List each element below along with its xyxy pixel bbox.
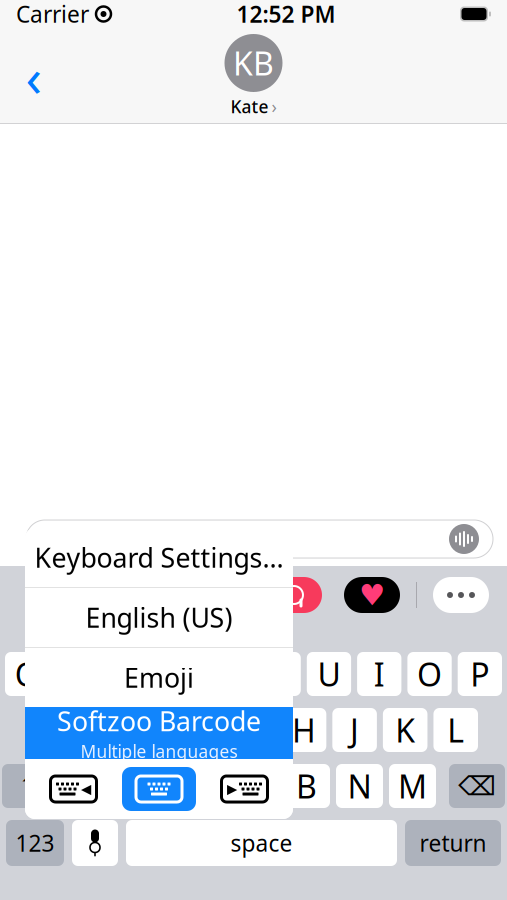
staticText: C bbox=[190, 765, 210, 807]
staticText: Softzoo Barcode bbox=[57, 703, 261, 739]
staticText: 123 bbox=[15, 828, 54, 858]
staticText: X bbox=[138, 765, 157, 807]
button[interactable]: Z bbox=[71, 764, 118, 808]
staticText: Z bbox=[85, 765, 103, 807]
staticText: R bbox=[168, 653, 188, 695]
button[interactable]: B bbox=[283, 764, 330, 808]
button[interactable]: More apps bbox=[433, 577, 489, 613]
button[interactable]: L bbox=[433, 708, 478, 752]
staticText: E bbox=[119, 653, 137, 695]
button[interactable]: M bbox=[389, 764, 436, 808]
button[interactable]: J bbox=[332, 708, 377, 752]
button[interactable]: S bbox=[80, 708, 124, 752]
button[interactable]: C bbox=[177, 764, 224, 808]
button[interactable]: Digital Touch bbox=[344, 577, 400, 613]
staticText: ♥ bbox=[359, 578, 385, 612]
button[interactable]: Y bbox=[256, 652, 301, 696]
button[interactable]: space bbox=[126, 820, 397, 866]
button[interactable]: E bbox=[106, 652, 150, 696]
staticText: I bbox=[374, 653, 385, 695]
button[interactable]: return bbox=[405, 820, 501, 866]
button[interactable]: Dictation bbox=[72, 820, 118, 866]
staticText: ◀ bbox=[81, 781, 91, 796]
button[interactable]: K bbox=[383, 708, 427, 752]
button[interactable]: Audio message bbox=[449, 524, 479, 554]
button[interactable]: N bbox=[336, 764, 383, 808]
staticText: K bbox=[395, 709, 415, 751]
button[interactable]: Previous keyboard bbox=[47, 773, 99, 805]
button[interactable]: O bbox=[407, 652, 452, 696]
staticText: U bbox=[317, 653, 340, 695]
staticText: Carrier bbox=[16, 0, 89, 29]
staticText: › bbox=[271, 95, 276, 118]
button[interactable]: R bbox=[156, 652, 200, 696]
staticText: return bbox=[419, 828, 486, 858]
button[interactable]: D bbox=[130, 708, 175, 752]
staticText: Q bbox=[15, 653, 40, 695]
staticText: L bbox=[447, 709, 464, 751]
button[interactable]: App Store bbox=[266, 577, 322, 613]
staticText: M bbox=[398, 765, 427, 807]
button[interactable]: Emoji bbox=[25, 648, 293, 707]
staticText: Multiple languages bbox=[80, 740, 237, 763]
button[interactable]: Keyboard bbox=[122, 767, 196, 811]
button[interactable]: KB bbox=[224, 34, 282, 118]
staticText: V bbox=[244, 765, 263, 807]
button[interactable]: F bbox=[181, 708, 225, 752]
button[interactable]: V bbox=[230, 764, 277, 808]
button[interactable]: Shift bbox=[2, 764, 58, 808]
staticText: N bbox=[347, 765, 371, 807]
staticText: J bbox=[350, 709, 359, 751]
button[interactable]: X bbox=[124, 764, 171, 808]
button[interactable]: English (US) bbox=[25, 588, 293, 647]
button[interactable]: Back bbox=[12, 54, 56, 98]
staticText: B bbox=[296, 765, 317, 807]
button[interactable]: A bbox=[29, 708, 74, 752]
button[interactable]: Softzoo Barcode bbox=[25, 707, 293, 759]
button[interactable]: G bbox=[231, 708, 276, 752]
staticText: ‹ bbox=[25, 41, 42, 111]
button[interactable]: Q bbox=[5, 652, 49, 696]
button[interactable]: H bbox=[282, 708, 326, 752]
staticText: D bbox=[141, 709, 164, 751]
staticText: A bbox=[41, 709, 61, 751]
button[interactable]: Keyboard Settings... bbox=[25, 528, 293, 587]
staticText: H bbox=[292, 709, 316, 751]
staticText: space bbox=[230, 828, 292, 858]
staticText: ⌫ bbox=[458, 771, 496, 801]
button[interactable]: I bbox=[357, 652, 401, 696]
staticText: F bbox=[194, 709, 211, 751]
staticText: Keyboard Settings... bbox=[34, 540, 283, 575]
staticText: KB bbox=[233, 42, 274, 84]
staticText: 12:52 PM bbox=[236, 0, 335, 29]
button[interactable]: 123 bbox=[6, 820, 64, 866]
button[interactable]: Next keyboard bbox=[218, 773, 270, 805]
staticText: S bbox=[93, 709, 111, 751]
staticText: ▶ bbox=[227, 781, 237, 796]
button[interactable]: P bbox=[458, 652, 502, 696]
staticText: G bbox=[242, 709, 265, 751]
button[interactable]: Delete bbox=[449, 764, 505, 808]
staticText: Emoji bbox=[124, 660, 194, 695]
staticText: English (US) bbox=[85, 600, 232, 635]
staticText: O bbox=[417, 653, 442, 695]
staticText: P bbox=[470, 653, 489, 695]
button[interactable]: U bbox=[307, 652, 351, 696]
staticText: ⇧ bbox=[17, 769, 42, 803]
staticText: Kate bbox=[230, 95, 268, 118]
